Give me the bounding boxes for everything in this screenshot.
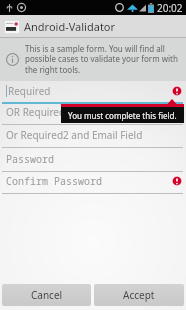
staticText: This is a sample form. You will find all… (25, 43, 179, 76)
staticText: OR Required (6, 105, 66, 119)
button[interactable]: Or Required2 and Email Field (0, 125, 186, 148)
staticText: Accept (123, 288, 155, 302)
staticText: 20:02 (157, 1, 183, 15)
other: Field error (172, 176, 182, 186)
staticText: Or Required2 and Email Field (6, 128, 143, 142)
staticText: You must complete this field. (68, 110, 177, 121)
button[interactable]: Accept (94, 284, 184, 306)
button[interactable]: Password (0, 149, 186, 172)
other: Field error (172, 86, 182, 96)
button[interactable]: Cancel (2, 284, 91, 306)
button[interactable]: OR Required (0, 102, 186, 125)
staticText: Android-Validator (24, 19, 116, 34)
button[interactable]: Required (0, 81, 186, 104)
staticText: Required (8, 84, 51, 98)
staticText: Password (6, 152, 54, 166)
staticText: Cancel (31, 288, 63, 302)
staticText: Confirm Password (6, 174, 102, 188)
button[interactable]: Confirm Password (0, 171, 186, 194)
